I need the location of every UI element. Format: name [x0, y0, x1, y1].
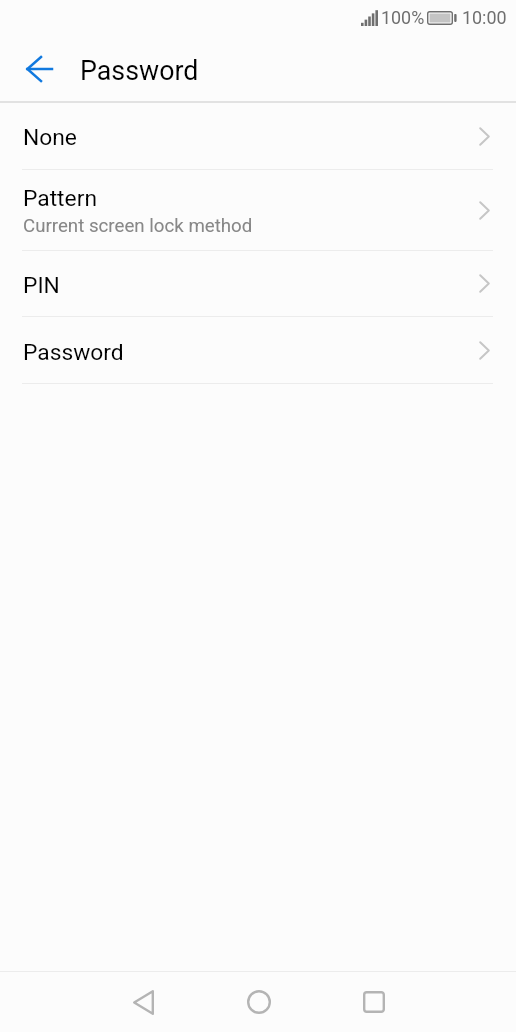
- staticText: Pattern: [23, 185, 97, 212]
- staticText: 100%: [381, 7, 425, 28]
- staticText: Current screen lock method: [23, 215, 253, 237]
- button[interactable]: PIN: [0, 251, 516, 317]
- button[interactable]: Recents: [316, 972, 431, 1032]
- button[interactable]: Back: [13, 40, 66, 93]
- button[interactable]: Pattern: [0, 170, 516, 251]
- staticText: 10:00: [462, 7, 507, 28]
- button[interactable]: Back: [86, 972, 201, 1032]
- staticText: PIN: [23, 272, 60, 299]
- button[interactable]: None: [0, 103, 516, 170]
- button[interactable]: Password: [0, 317, 516, 384]
- button[interactable]: Home: [201, 972, 316, 1032]
- staticText: Password: [23, 339, 124, 366]
- staticText: Password: [80, 55, 199, 86]
- staticText: None: [23, 124, 77, 151]
